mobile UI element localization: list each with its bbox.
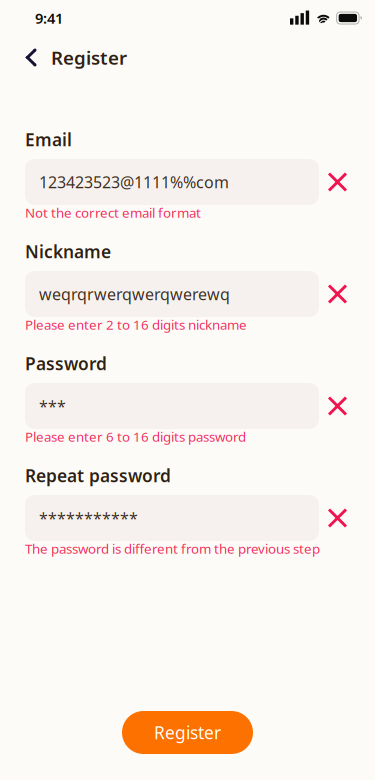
staticText: 123423523@1111%%com xyxy=(39,171,229,193)
button[interactable]: Register xyxy=(122,711,253,754)
staticText: Not the correct email format xyxy=(25,204,201,221)
button[interactable]: Back xyxy=(0,36,51,79)
staticText: 9:41 xyxy=(35,8,63,28)
staticText: Nickname xyxy=(25,240,111,263)
staticText: Password xyxy=(25,352,107,375)
button[interactable]: Clear Email xyxy=(319,159,356,205)
staticText: Please enter 2 to 16 digits nickname xyxy=(25,316,247,333)
button[interactable]: 123423523@1111%%com xyxy=(25,159,319,205)
staticText: *********** xyxy=(39,507,138,529)
staticText: Please enter 6 to 16 digits password xyxy=(25,428,246,445)
button[interactable]: weqrqrwerqwerqwerewq xyxy=(25,271,319,317)
staticText: Register xyxy=(154,721,221,744)
staticText: Register xyxy=(51,45,127,70)
button[interactable]: Clear Password xyxy=(319,383,356,429)
staticText: Email xyxy=(25,128,72,151)
button[interactable]: *** xyxy=(25,383,319,429)
staticText: Repeat password xyxy=(25,464,171,487)
button[interactable]: Clear Nickname xyxy=(319,271,356,317)
staticText: *** xyxy=(39,395,66,417)
staticText: The password is different from the previ… xyxy=(25,540,320,557)
button[interactable]: *********** xyxy=(25,495,319,541)
button[interactable]: Clear Repeat password xyxy=(319,495,356,541)
staticText: weqrqrwerqwerqwerewq xyxy=(39,283,230,305)
